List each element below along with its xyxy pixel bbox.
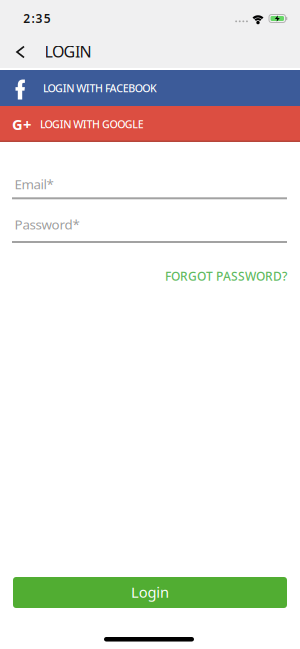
staticText: Email* (14, 175, 53, 193)
staticText: LOGIN (44, 41, 91, 62)
staticText: 2:35 (23, 10, 51, 26)
staticText: LOGIN WITH FACEBOOK (43, 81, 157, 95)
button[interactable]: Login (13, 577, 287, 608)
staticText: Password* (14, 215, 79, 233)
button[interactable]: LOGIN WITH FACEBOOK (0, 70, 300, 106)
staticText: G+ (12, 114, 31, 134)
button[interactable]: G+ (0, 106, 300, 142)
staticText: FORGOT PASSWORD? (165, 268, 287, 284)
staticText: LOGIN WITH GOOGLE (40, 117, 144, 131)
staticText: Login (131, 582, 169, 602)
button[interactable]: FORGOT PASSWORD? (87, 268, 287, 284)
button[interactable]: Back (11, 40, 30, 63)
